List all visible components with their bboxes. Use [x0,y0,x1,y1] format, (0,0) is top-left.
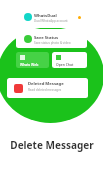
button[interactable] [7,78,88,98]
button[interactable] [16,52,49,68]
staticText: Save status photo & video [34,41,71,45]
staticText: Read deleted messages [28,88,62,92]
button[interactable] [52,52,87,68]
staticText: Delete Messager [10,138,94,152]
staticText: Whats Web [20,62,39,67]
staticText: Save Status [34,35,59,41]
staticText: Deleted Message [28,81,64,87]
staticText: Dual WhatsApp account [34,19,68,23]
staticText: WhatsDual [34,13,57,19]
button[interactable] [16,7,87,28]
staticText: Open Chat [56,62,74,67]
button[interactable] [16,29,87,48]
